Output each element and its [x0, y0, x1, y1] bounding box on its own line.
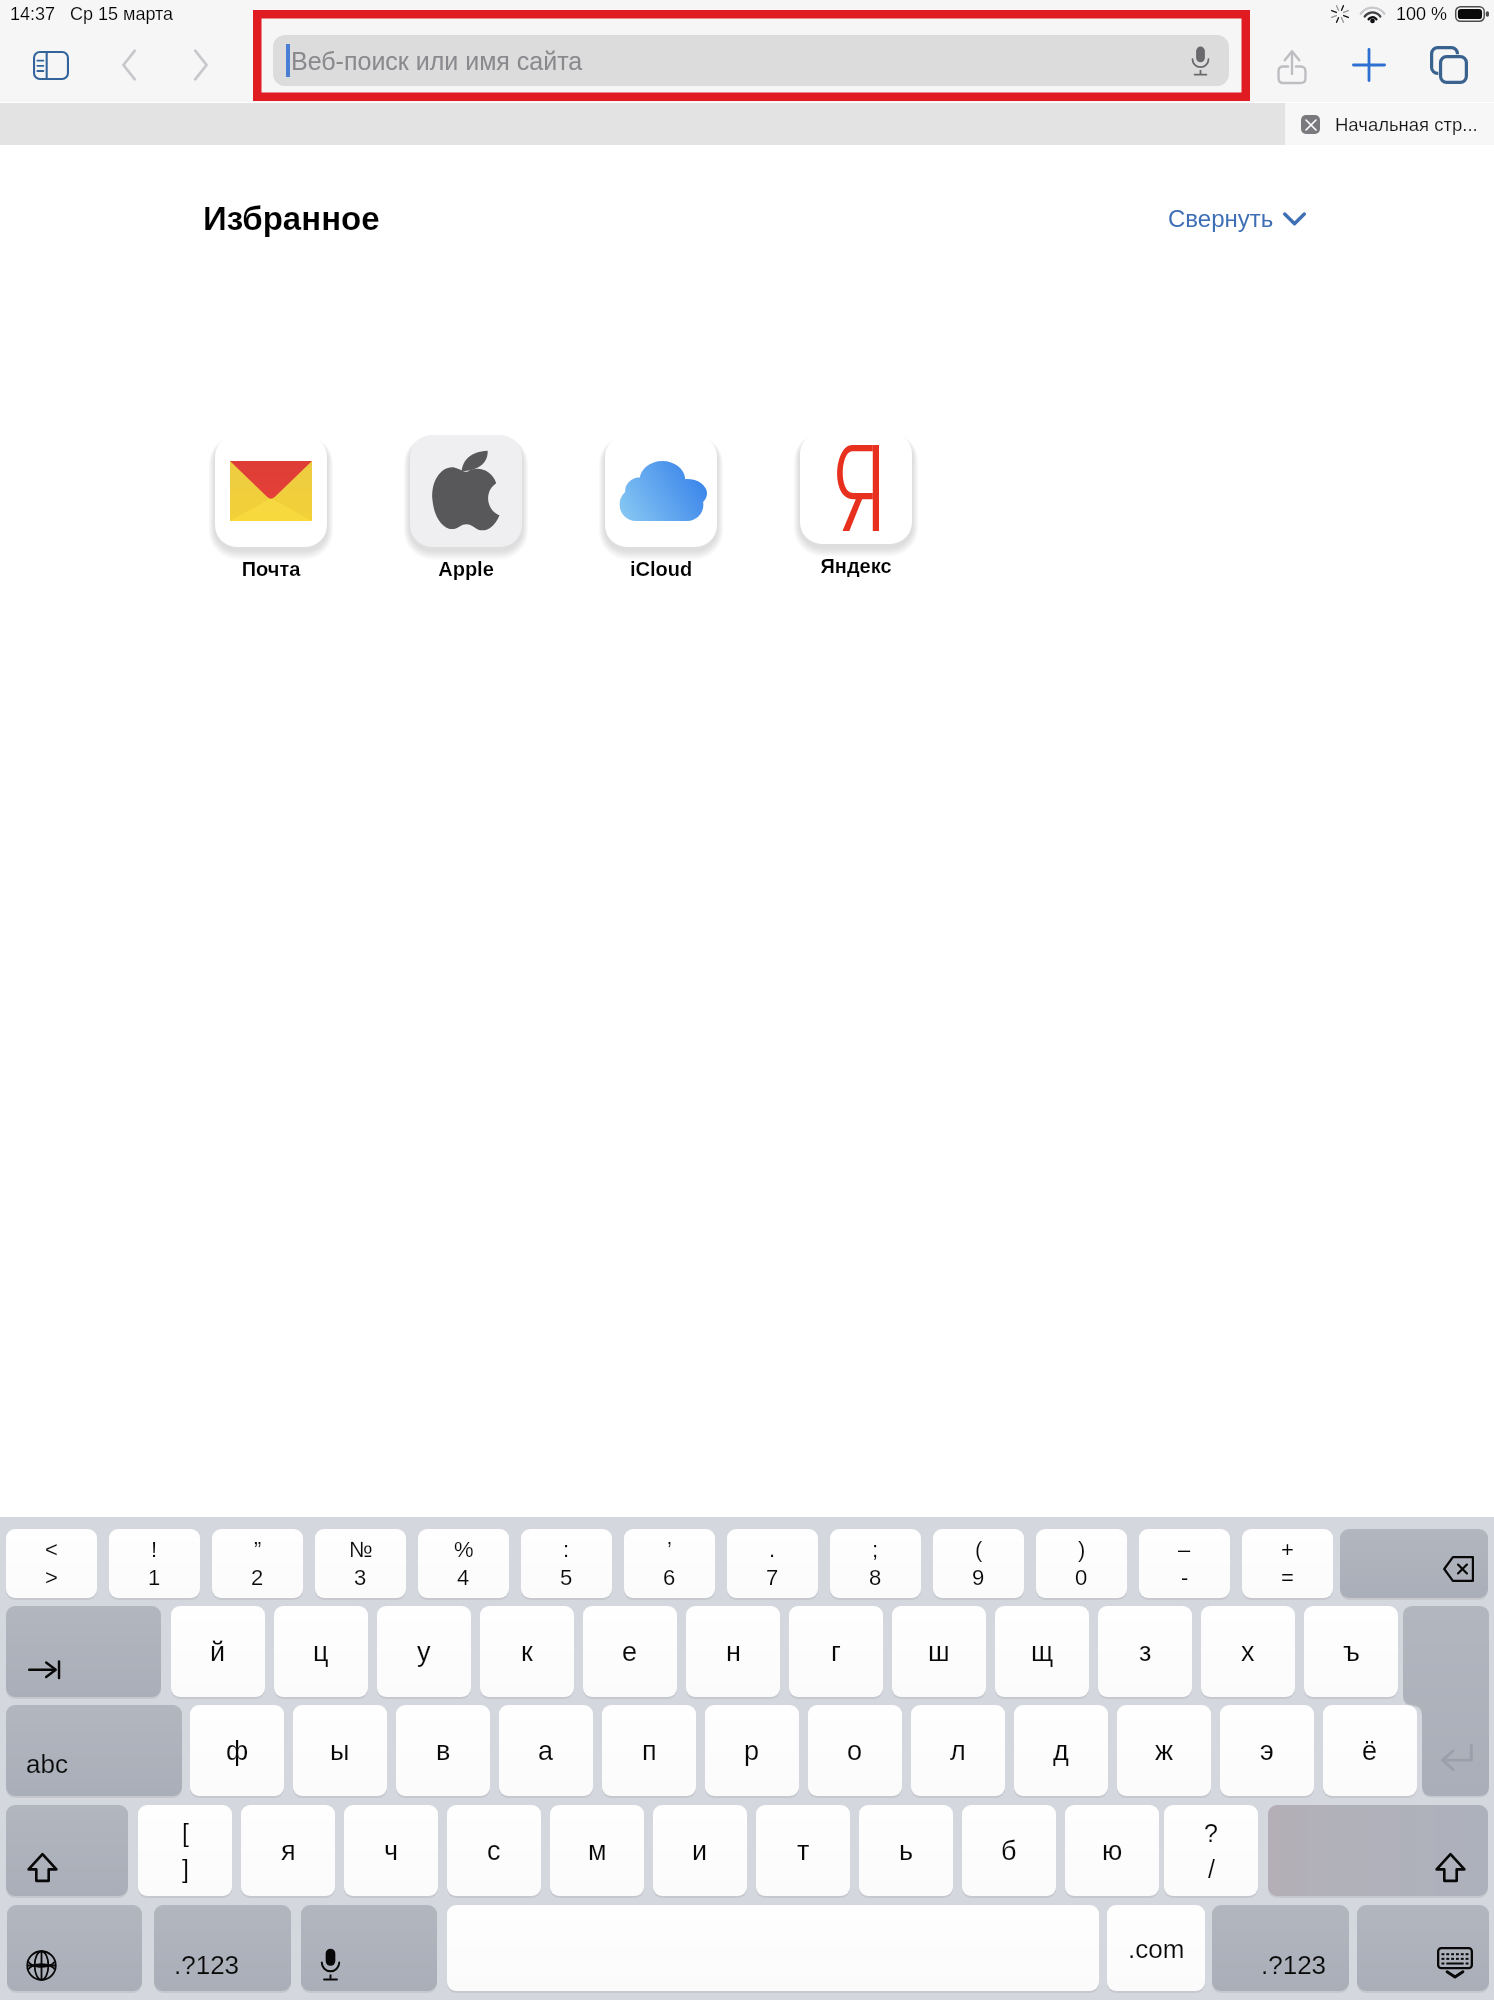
button[interactable]: Shift: [6, 1805, 128, 1896]
button[interactable]: Яндекс: [800, 432, 912, 577]
button[interactable]: [ ]: [138, 1805, 232, 1896]
button[interactable]: в: [396, 1705, 490, 1796]
button[interactable]: я: [241, 1805, 335, 1896]
button[interactable]: № 3: [315, 1529, 406, 1598]
button[interactable]: ф: [190, 1705, 284, 1796]
button[interactable]: . 7: [727, 1529, 818, 1598]
staticText: Почта: [215, 558, 327, 580]
button[interactable]: Hide keyboard: [1357, 1905, 1489, 1991]
staticText: ц: [313, 1637, 329, 1667]
button[interactable]: < >: [6, 1529, 97, 1598]
staticText: о: [847, 1736, 863, 1766]
button[interactable]: ! 1: [109, 1529, 200, 1598]
staticText: .com: [1128, 1934, 1185, 1963]
staticText: –: [1178, 1537, 1191, 1562]
button[interactable]: ? /: [1164, 1805, 1258, 1896]
button[interactable]: Свернуть: [1168, 205, 1306, 232]
button[interactable]: ц: [274, 1606, 368, 1697]
button[interactable]: Back: [104, 40, 154, 90]
button[interactable]: : 5: [521, 1529, 612, 1598]
staticText: iCloud: [605, 558, 717, 580]
button[interactable]: Backspace: [1340, 1529, 1488, 1598]
staticText: ?: [1204, 1819, 1218, 1847]
button[interactable]: г: [789, 1606, 883, 1697]
button[interactable]: ж: [1117, 1705, 1211, 1796]
button[interactable]: щ: [995, 1606, 1089, 1697]
button[interactable]: л: [911, 1705, 1005, 1796]
button[interactable]: з: [1098, 1606, 1192, 1697]
button[interactable]: ( 9: [933, 1529, 1024, 1598]
staticText: ;: [872, 1537, 879, 1562]
button[interactable]: м: [550, 1805, 644, 1896]
staticText: -: [1181, 1565, 1189, 1590]
staticText: Начальная стр...: [1335, 114, 1478, 135]
button[interactable]: Return: [1403, 1606, 1489, 1796]
staticText: ю: [1102, 1836, 1123, 1866]
button[interactable]: % 4: [418, 1529, 509, 1598]
staticText: ё: [1362, 1736, 1378, 1766]
button[interactable]: а: [499, 1705, 593, 1796]
button[interactable]: New tab: [1342, 38, 1396, 92]
staticText: ъ: [1343, 1637, 1360, 1667]
button[interactable]: ; 8: [830, 1529, 921, 1598]
button[interactable]: Dictate: [301, 1905, 437, 1991]
button[interactable]: ’ 6: [624, 1529, 715, 1598]
button[interactable]: Tabs: [1422, 38, 1476, 92]
button[interactable]: Close tab: [1301, 115, 1320, 134]
staticText: 100 %: [1396, 4, 1448, 24]
button[interactable]: к: [480, 1606, 574, 1697]
staticText: е: [622, 1637, 638, 1667]
button[interactable]: э: [1220, 1705, 1314, 1796]
button[interactable]: ш: [892, 1606, 986, 1697]
button[interactable]: с: [447, 1805, 541, 1896]
button[interactable]: .?123: [1212, 1905, 1349, 1991]
button[interactable]: ъ: [1304, 1606, 1398, 1697]
button[interactable]: и: [653, 1805, 747, 1896]
button[interactable]: Close tab: [1285, 103, 1494, 145]
button[interactable]: Почта: [215, 435, 327, 580]
button[interactable]: Веб-поиск или имя сайта: [273, 35, 1229, 86]
button[interactable]: е: [583, 1606, 677, 1697]
staticText: 8: [869, 1565, 882, 1590]
staticText: ): [1078, 1537, 1086, 1562]
button[interactable]: Apple: [410, 435, 522, 580]
staticText: (: [975, 1537, 983, 1562]
button[interactable]: р: [705, 1705, 799, 1796]
staticText: э: [1260, 1736, 1274, 1766]
staticText: >: [45, 1565, 58, 1590]
button[interactable]: т: [756, 1805, 850, 1896]
button[interactable]: .?123: [154, 1905, 291, 1991]
button[interactable]: ) 0: [1036, 1529, 1127, 1598]
button[interactable]: н: [686, 1606, 780, 1697]
button[interactable]: о: [808, 1705, 902, 1796]
button[interactable]: abc: [6, 1705, 182, 1796]
button[interactable]: ь: [859, 1805, 953, 1896]
button[interactable]: ё: [1323, 1705, 1417, 1796]
button[interactable]: ы: [293, 1705, 387, 1796]
button[interactable]: Tab: [6, 1606, 161, 1697]
button[interactable]: iCloud: [605, 435, 717, 580]
button[interactable]: д: [1014, 1705, 1108, 1796]
button[interactable]: х: [1201, 1606, 1295, 1697]
button[interactable]: Sidebar: [26, 40, 76, 90]
button[interactable]: ” 2: [212, 1529, 303, 1598]
button[interactable]: Forward: [175, 40, 225, 90]
button[interactable]: Share: [1265, 38, 1319, 92]
staticText: Apple: [410, 558, 522, 580]
button[interactable]: ч: [344, 1805, 438, 1896]
staticText: з: [1139, 1637, 1152, 1667]
button[interactable]: .com: [1107, 1905, 1205, 1991]
button[interactable]: ю: [1065, 1805, 1159, 1896]
button[interactable]: + =: [1242, 1529, 1333, 1598]
staticText: в: [436, 1736, 451, 1766]
button[interactable]: й: [171, 1606, 265, 1697]
staticText: Ср 15 марта: [70, 4, 174, 24]
button[interactable]: б: [962, 1805, 1056, 1896]
button[interactable]: – -: [1139, 1529, 1230, 1598]
staticText: у: [417, 1637, 431, 1667]
button[interactable]: у: [377, 1606, 471, 1697]
button[interactable]: Shift: [1268, 1805, 1488, 1896]
button[interactable]: п: [602, 1705, 696, 1796]
button[interactable]: Change language: [7, 1905, 142, 1991]
